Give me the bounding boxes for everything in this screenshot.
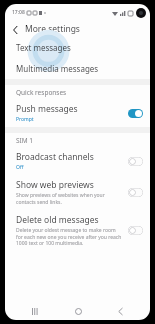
- staticText: Delete old messages: [16, 214, 99, 226]
- button[interactable]: Back: [9, 23, 22, 36]
- button[interactable]: Off: [128, 226, 143, 235]
- button[interactable]: Delete old messages: [5, 210, 150, 251]
- staticText: Multimedia messages: [16, 63, 99, 74]
- button[interactable]: Home: [66, 303, 90, 320]
- staticText: Quick responses: [16, 88, 67, 97]
- button[interactable]: Show web previews: [5, 175, 150, 210]
- staticText: Push messages: [16, 103, 78, 115]
- button[interactable]: Off: [128, 188, 143, 197]
- button[interactable]: Off: [128, 157, 143, 166]
- button[interactable]: Push messages: [5, 99, 150, 127]
- staticText: More settings: [25, 23, 80, 35]
- staticText: Text messages: [16, 42, 71, 53]
- button[interactable]: Broadcast channels: [5, 147, 150, 175]
- staticText: SIM 1: [16, 136, 34, 145]
- staticText: Prompt: [16, 116, 34, 123]
- button[interactable]: Text messages: [5, 37, 150, 58]
- staticText: Broadcast channels: [16, 151, 94, 163]
- button[interactable]: Multimedia messages: [5, 58, 150, 79]
- button[interactable]: Recents: [23, 303, 47, 320]
- button[interactable]: Back: [108, 303, 132, 320]
- staticText: Delete your oldest message to make room …: [16, 227, 122, 247]
- staticText: 17:08: [12, 9, 25, 16]
- staticText: Show web previews: [16, 179, 94, 191]
- staticText: Show previews of websites when your cont…: [16, 192, 105, 206]
- button[interactable]: On: [128, 109, 143, 118]
- staticText: Off: [16, 164, 24, 171]
